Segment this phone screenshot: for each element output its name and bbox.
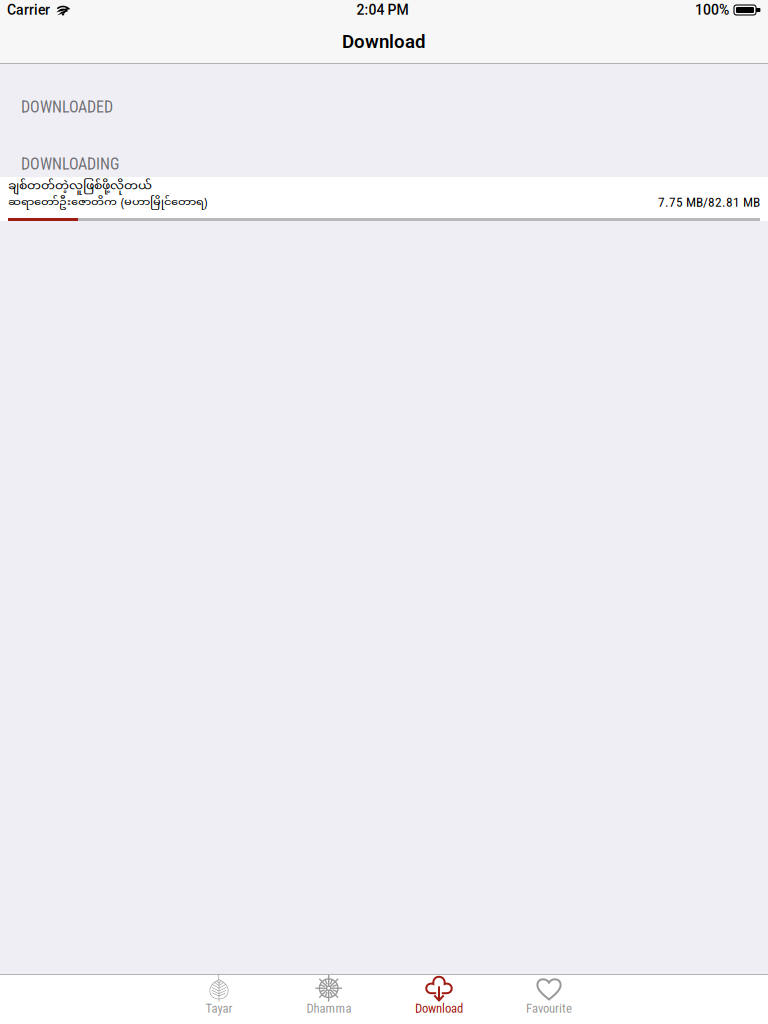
staticText: Favourite (526, 1001, 572, 1016)
staticText: ဆရာတော်ဦးဇောတိက (မဟာမြိုင်တောရ) (8, 194, 208, 211)
staticText: DOWNLOADED (21, 98, 113, 116)
staticText: 7.75 MB/82.81 MB (658, 194, 760, 210)
button[interactable]: Download (384, 975, 494, 1024)
button[interactable]: Favourite (494, 975, 604, 1024)
button[interactable]: Tayar (164, 975, 274, 1024)
staticText: 100% (695, 2, 729, 18)
staticText: Download (342, 31, 426, 52)
staticText: Carrier (7, 2, 50, 18)
button[interactable]: ချစ်တတ်တဲ့လူဖြစ်ဖို့လိုတယ် (0, 177, 768, 221)
staticText: ချစ်တတ်တဲ့လူဖြစ်ဖို့လိုတယ် (8, 178, 152, 195)
staticText: 2:04 PM (356, 2, 408, 18)
button[interactable]: Dhamma (274, 975, 384, 1024)
staticText: DOWNLOADING (21, 155, 119, 173)
staticText: Download (415, 1001, 463, 1016)
staticText: Dhamma (306, 1001, 351, 1016)
staticText: Tayar (205, 1001, 232, 1016)
